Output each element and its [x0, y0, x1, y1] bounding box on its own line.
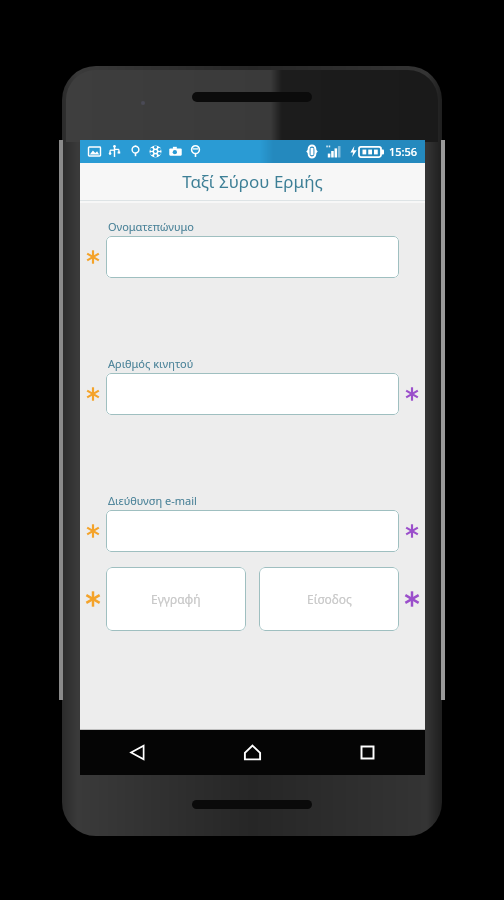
staticText: Αριθμός κινητού — [108, 356, 194, 371]
button[interactable] — [106, 373, 399, 415]
button[interactable]: Είσοδος — [259, 567, 399, 631]
button[interactable]: Back — [80, 730, 195, 775]
button[interactable]: Εγγραφή — [106, 567, 246, 631]
staticText: Ονοματεπώνυμο — [108, 219, 194, 234]
staticText: Εγγραφή — [151, 591, 201, 607]
staticText: Ταξί Σύρου Ερμής — [182, 170, 323, 193]
button[interactable]: Recents — [310, 730, 425, 775]
staticText: Είσοδος — [307, 591, 352, 607]
button[interactable]: Home — [195, 730, 310, 775]
staticText: Διεύθυνση e-mail — [108, 493, 197, 508]
staticText: 15:56 — [389, 144, 418, 159]
button[interactable] — [106, 236, 399, 278]
button[interactable] — [106, 510, 399, 552]
